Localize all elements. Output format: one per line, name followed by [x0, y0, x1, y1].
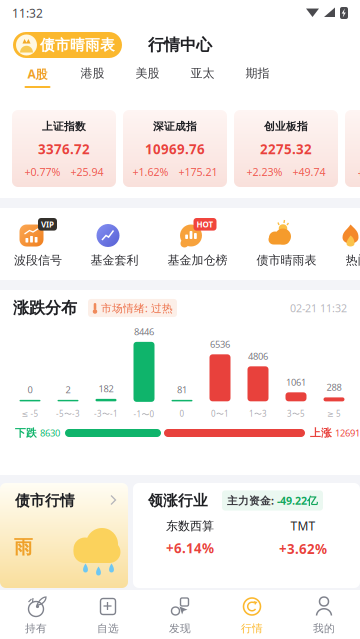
staticText: +25.94 — [70, 165, 103, 179]
staticText: +5.16% — [357, 166, 360, 180]
staticText: 债市行情 — [15, 491, 75, 509]
staticText: 2 — [65, 383, 70, 396]
staticText: 8446 — [134, 325, 154, 338]
button[interactable]: 热门 — [331, 208, 360, 280]
staticText: -5〜-3 — [56, 408, 80, 419]
staticText: 上证指数 — [42, 120, 86, 133]
staticText: 东数西算 — [166, 519, 214, 533]
button[interactable]: HOT — [153, 208, 242, 280]
staticText: 港股 — [80, 66, 104, 81]
button[interactable]: 创业板指 — [234, 110, 338, 187]
staticText: 波段信号 — [14, 253, 62, 268]
staticText: 12691 — [335, 427, 360, 439]
staticText: -49.22亿 — [277, 493, 318, 508]
staticText: -3〜-1 — [94, 408, 118, 419]
staticText: 主力资金: — [227, 493, 277, 508]
staticText: +175.21 — [178, 165, 217, 179]
staticText: 4806 — [248, 350, 268, 362]
staticText: 3376.72 — [38, 140, 90, 158]
button[interactable]: 发现 — [144, 590, 216, 639]
staticText: ≤ -5 — [21, 408, 38, 419]
staticText: HOT — [196, 219, 213, 230]
staticText: 美股 — [135, 66, 159, 81]
staticText: 我的 — [313, 622, 335, 635]
staticText: 领涨行业 — [148, 491, 208, 509]
staticText: 亚太 — [190, 66, 214, 81]
staticText: 自选 — [97, 622, 119, 635]
button[interactable]: 行情 — [216, 590, 288, 639]
button[interactable]: 美股 — [120, 64, 175, 104]
staticText: 市场情绪: 过热 — [101, 301, 173, 315]
staticText: 涨跌分布 — [13, 298, 77, 318]
button[interactable]: 债市晴雨表 — [13, 32, 122, 58]
staticText: 0 — [179, 408, 184, 419]
button[interactable]: 期指 — [230, 64, 285, 104]
staticText: 11:32 — [12, 5, 43, 21]
staticText: +0.77% — [24, 165, 60, 179]
staticText: ≥ 5 — [327, 408, 341, 419]
staticText: 深证成指 — [153, 120, 197, 133]
staticText: 债市晴雨表 — [256, 253, 316, 268]
staticText: +1.62% — [132, 165, 168, 179]
staticText: 行情中心 — [148, 35, 212, 55]
button[interactable]: 自选 — [72, 590, 144, 639]
staticText: 6536 — [210, 338, 230, 350]
staticText: 持有 — [25, 622, 47, 635]
button[interactable]: A股 — [10, 64, 65, 104]
staticText: 0 — [27, 383, 32, 396]
staticText: 0〜1 — [211, 408, 229, 419]
staticText: VIP — [41, 219, 54, 230]
staticText: 1〜3 — [249, 408, 267, 419]
button[interactable]: 港股 — [65, 64, 120, 104]
button[interactable]: VIP — [0, 208, 76, 280]
staticText: A股 — [27, 66, 47, 82]
staticText: TMT — [290, 518, 315, 534]
staticText: -1〜0 — [133, 409, 154, 420]
staticText: 雨 — [14, 535, 33, 558]
button[interactable]: 债市晴雨表 — [242, 208, 331, 280]
staticText: 10969.76 — [145, 140, 205, 158]
staticText: 288 — [326, 381, 341, 393]
button[interactable]: 领涨行业 — [133, 483, 360, 588]
staticText: +2.23% — [246, 165, 282, 179]
staticText: +49.74 — [292, 165, 325, 179]
staticText: 债市晴雨表 — [40, 36, 115, 54]
staticText: 期指 — [245, 66, 269, 81]
button[interactable]: 深证成指 — [123, 110, 227, 187]
staticText: 上涨 — [310, 426, 332, 439]
staticText: 8630 — [40, 427, 60, 439]
button[interactable]: 亚太 — [175, 64, 230, 104]
staticText: 基金套利 — [90, 253, 138, 268]
staticText: 02-21 11:32 — [290, 301, 347, 315]
button[interactable]: 上证指数 — [12, 110, 116, 187]
staticText: 基金加仓榜 — [167, 253, 227, 268]
staticText: 2275.32 — [260, 140, 312, 158]
staticText: 下跌 — [15, 426, 37, 439]
button[interactable]: 债市行情 — [0, 483, 128, 588]
staticText: 1061 — [286, 376, 306, 388]
staticText: 行情 — [241, 622, 263, 635]
staticText: 81 — [177, 383, 187, 396]
staticText: 发现 — [169, 622, 191, 635]
button[interactable]: 基金套利 — [76, 208, 153, 280]
staticText: 创业板指 — [264, 120, 308, 133]
staticText: 热门 — [345, 253, 360, 268]
staticText: 182 — [98, 382, 113, 395]
button[interactable]: 科创50指 — [345, 110, 360, 187]
staticText: 3〜5 — [287, 408, 305, 419]
staticText: +3.62% — [279, 540, 327, 558]
button[interactable]: 我的 — [288, 590, 360, 639]
staticText: +6.14% — [166, 539, 214, 557]
button[interactable]: 持有 — [0, 590, 72, 639]
